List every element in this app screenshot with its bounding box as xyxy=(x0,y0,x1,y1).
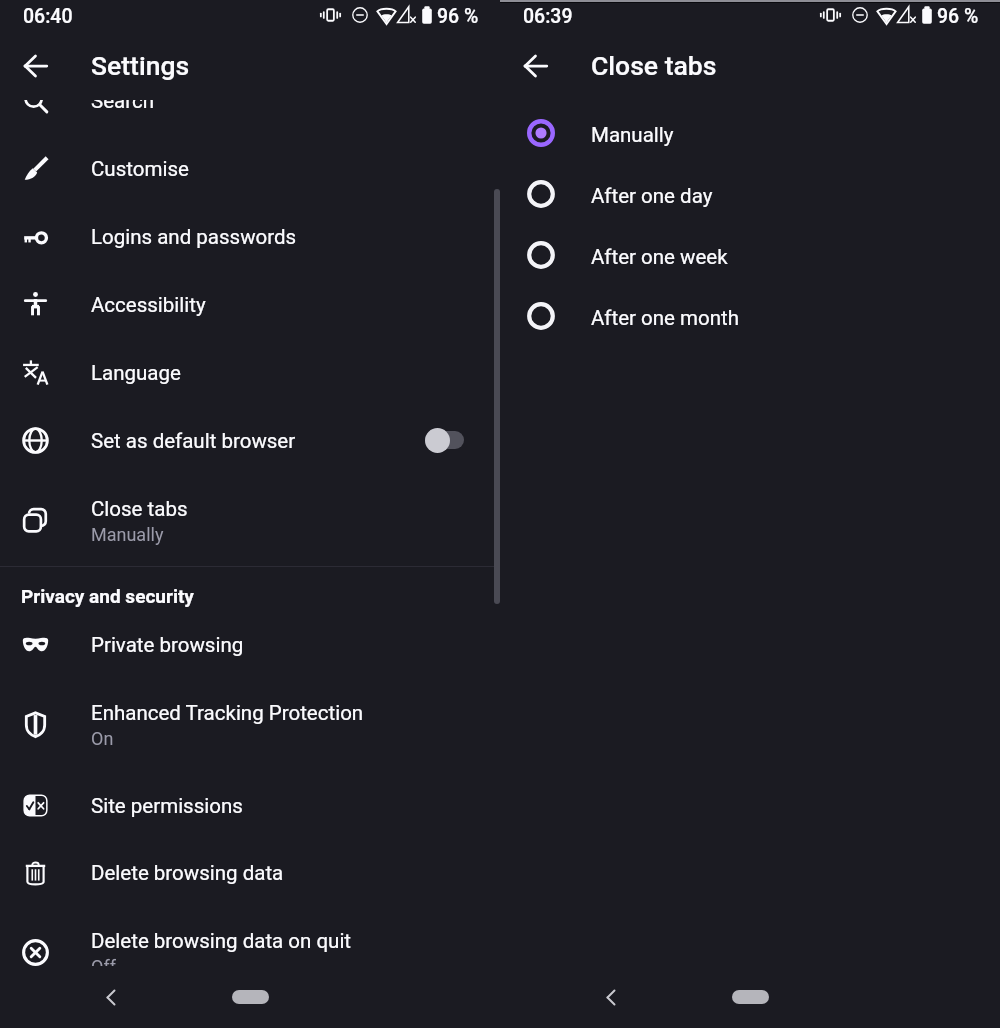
button[interactable]: Logins and passwords xyxy=(0,202,500,270)
staticText: Off xyxy=(91,956,116,966)
button[interactable]: Delete browsing data xyxy=(0,838,500,906)
staticText: Settings xyxy=(91,50,190,81)
staticText: 06:40 xyxy=(23,5,73,28)
staticText: On xyxy=(91,728,114,749)
staticText: Privacy and security xyxy=(21,585,194,607)
staticText: After one week xyxy=(591,245,728,269)
staticText: Private browsing xyxy=(91,633,244,657)
staticText: Delete browsing data on quit xyxy=(91,929,352,953)
button[interactable]: Set as default browser toggle xyxy=(425,431,464,449)
staticText: 96 % xyxy=(437,5,479,28)
button[interactable]: After one week xyxy=(500,222,1000,283)
staticText: Enhanced Tracking Protection xyxy=(91,701,364,725)
staticText: 96 % xyxy=(937,5,979,28)
button[interactable]: Home xyxy=(210,980,290,1014)
staticText: Set as default browser xyxy=(91,429,296,453)
button[interactable]: After one day xyxy=(500,161,1000,222)
staticText: Language xyxy=(91,361,181,385)
staticText: Site permissions xyxy=(91,794,243,818)
button[interactable]: Set as default browser xyxy=(0,406,500,474)
button[interactable]: Back xyxy=(589,975,633,1019)
staticText: Close tabs xyxy=(91,497,188,521)
staticText: Close tabs xyxy=(591,50,717,81)
button[interactable]: Navigate up xyxy=(11,42,59,90)
staticText: Manually xyxy=(591,123,674,147)
button[interactable]: Customise xyxy=(0,134,500,202)
staticText: Search xyxy=(91,100,154,113)
button[interactable]: Home xyxy=(710,980,790,1014)
button[interactable]: Close tabs xyxy=(0,474,500,566)
staticText: Customise xyxy=(91,157,189,181)
button[interactable]: After one month xyxy=(500,283,1000,344)
staticText: 06:39 xyxy=(523,5,573,28)
button[interactable]: Language xyxy=(0,338,500,406)
button[interactable]: Private browsing xyxy=(0,610,500,678)
button[interactable]: Search xyxy=(0,100,500,134)
staticText: Delete browsing data xyxy=(91,861,284,885)
staticText: Accessibility xyxy=(91,293,206,317)
button[interactable]: Navigate up xyxy=(511,42,559,90)
button[interactable]: Enhanced Tracking Protection xyxy=(0,678,500,770)
staticText: After one day xyxy=(591,184,713,208)
button[interactable]: Delete browsing data on quit xyxy=(0,906,500,966)
staticText: Manually xyxy=(91,524,164,545)
button[interactable]: Back xyxy=(89,975,133,1019)
button[interactable]: Site permissions xyxy=(0,771,500,839)
button[interactable]: Manually xyxy=(500,100,1000,161)
staticText: Logins and passwords xyxy=(91,225,297,249)
button[interactable]: Accessibility xyxy=(0,270,500,338)
staticText: After one month xyxy=(591,306,740,330)
